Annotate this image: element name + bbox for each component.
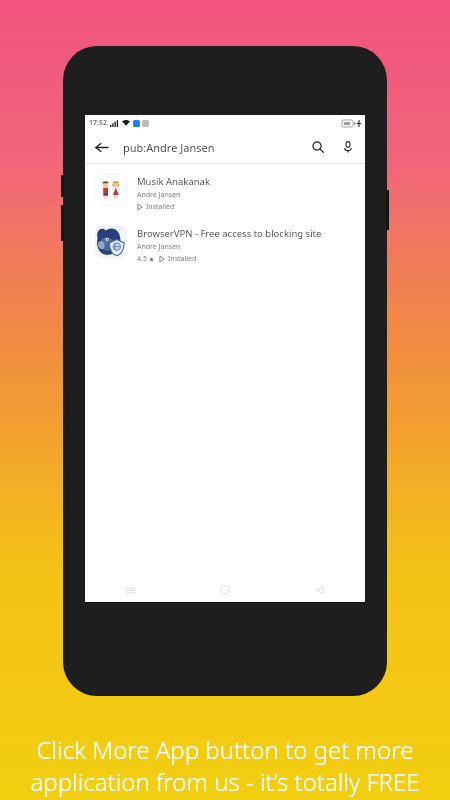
button[interactable]: Recent apps xyxy=(119,579,141,601)
button[interactable]: Voice search xyxy=(333,132,363,162)
button[interactable]: Search xyxy=(303,132,333,162)
staticText: pub:Andre Jansen xyxy=(123,140,215,155)
button[interactable]: BrowserVPN - Free access to blocking sit… xyxy=(85,222,365,268)
staticText: Andre Jansen xyxy=(137,242,181,252)
staticText: Installed xyxy=(146,202,175,212)
staticText: Installed xyxy=(168,254,197,264)
staticText: BrowserVPN - Free access to blocking sit… xyxy=(137,227,322,240)
button[interactable]: Back xyxy=(85,131,117,163)
button[interactable]: Back xyxy=(309,579,331,601)
staticText: Andre Jansen xyxy=(137,190,181,200)
staticText: 4.5 xyxy=(137,254,147,264)
button[interactable]: Home xyxy=(214,579,236,601)
staticText: 17:52 xyxy=(89,118,107,128)
button[interactable]: Musik Anakanak xyxy=(85,170,365,216)
staticText: Musik Anakanak xyxy=(137,175,210,188)
staticText: Click More App button to get more applic… xyxy=(12,733,438,798)
